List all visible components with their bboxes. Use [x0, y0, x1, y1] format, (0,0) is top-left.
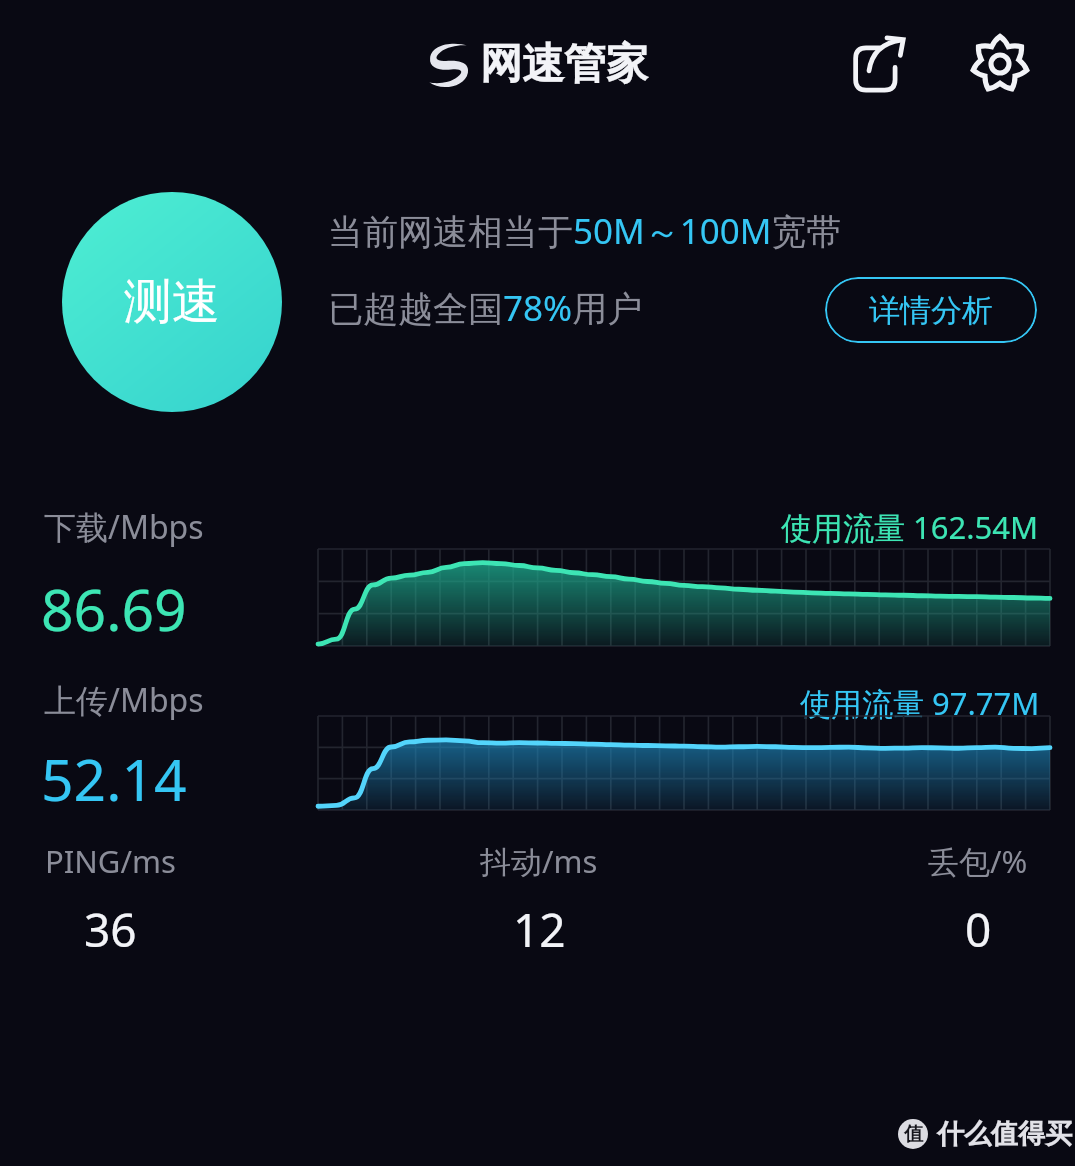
button[interactable]: 抖动/ms — [399, 840, 679, 955]
staticText: 0 — [965, 898, 992, 955]
staticText: 使用流量 97.77M — [800, 682, 1040, 724]
staticText: 12 — [513, 898, 566, 955]
staticText: 已超越全国78%用户 — [328, 284, 643, 332]
staticText: 下载/Mbps — [44, 505, 204, 549]
staticText: PING/ms — [45, 840, 176, 882]
button[interactable]: 详情分析 — [825, 277, 1037, 343]
staticText: 36 — [84, 898, 137, 955]
staticText: 抖动/ms — [480, 840, 598, 882]
button[interactable]: 测速 — [62, 192, 282, 412]
staticText: 使用流量 162.54M — [781, 506, 1039, 548]
button[interactable]: Settings — [958, 22, 1042, 106]
staticText: 测速 — [124, 272, 220, 332]
button[interactable]: Share — [838, 22, 922, 106]
staticText: 52.14 — [41, 740, 187, 818]
staticText: 网速管家 — [480, 38, 648, 91]
staticText: 值 — [904, 1122, 923, 1146]
staticText: 上传/Mbps — [44, 678, 204, 722]
staticText: 丢包/% — [928, 840, 1028, 882]
staticText: 86.69 — [41, 570, 187, 648]
staticText: 详情分析 — [869, 291, 993, 330]
staticText: 当前网速相当于50M～100M宽带 — [328, 207, 842, 255]
button[interactable]: 丢包/% — [838, 840, 1075, 955]
staticText: 什么值得买 — [937, 1117, 1072, 1151]
button[interactable]: PING/ms — [0, 840, 250, 955]
